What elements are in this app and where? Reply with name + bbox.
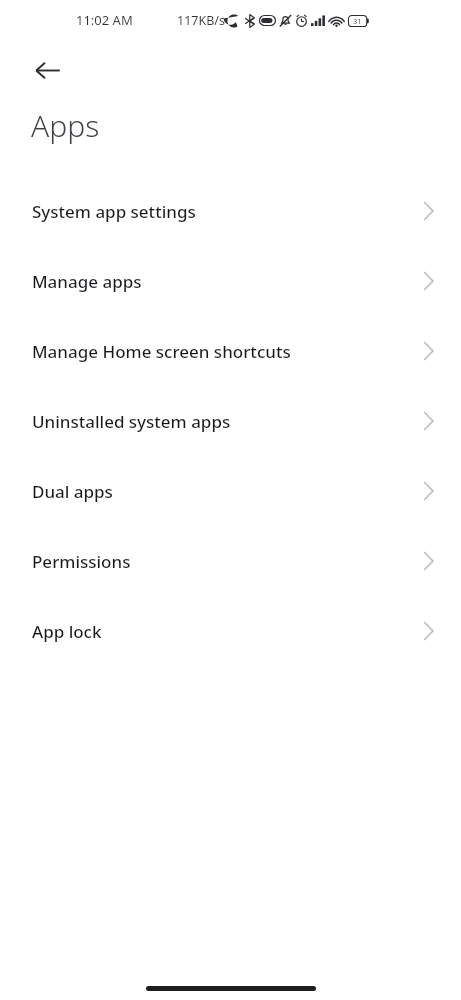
button[interactable]: Uninstalled system apps (0, 386, 461, 456)
staticText: 31 (353, 16, 362, 26)
staticText: Manage Home screen shortcuts (32, 340, 291, 363)
staticText: Apps (31, 105, 100, 146)
staticText: Uninstalled system apps (32, 410, 231, 433)
button[interactable]: Back (21, 44, 73, 96)
staticText: Permissions (32, 550, 131, 573)
button[interactable]: System app settings (0, 176, 461, 246)
button[interactable]: App lock (0, 596, 461, 666)
staticText: Dual apps (32, 480, 113, 503)
button[interactable]: Manage Home screen shortcuts (0, 316, 461, 386)
staticText: System app settings (32, 200, 196, 223)
staticText: Manage apps (32, 270, 142, 293)
staticText: 11:02 AM (76, 11, 133, 29)
button[interactable]: Dual apps (0, 456, 461, 526)
staticText: 117KB/s (177, 12, 225, 29)
button[interactable]: Permissions (0, 526, 461, 596)
button[interactable]: Manage apps (0, 246, 461, 316)
staticText: App lock (32, 620, 102, 643)
